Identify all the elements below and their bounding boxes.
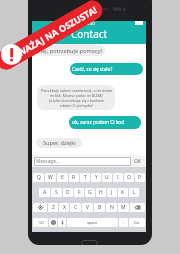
staticText: F [78, 189, 81, 196]
staticText: G [88, 189, 92, 196]
staticText: D [66, 189, 70, 196]
button[interactable]: K [118, 188, 128, 197]
button[interactable]: OK [131, 157, 144, 166]
button[interactable]: G [85, 188, 95, 197]
staticText: 123 [38, 220, 44, 225]
staticText: S [55, 189, 58, 196]
staticText: Z [52, 204, 55, 211]
button[interactable]: M [118, 203, 129, 212]
button[interactable]: W [45, 173, 56, 182]
button[interactable]: Contact [32, 27, 146, 44]
staticText: I [117, 174, 119, 181]
staticText: M [121, 204, 126, 211]
button[interactable]: R [69, 173, 79, 182]
staticText: ok, zaraz podam Ci kod [72, 119, 125, 126]
staticText: U [105, 174, 109, 181]
staticText: 12:00 [84, 21, 95, 27]
button[interactable]: Voice input [58, 218, 66, 227]
button[interactable]: 123 [33, 218, 48, 227]
button[interactable]: . [119, 218, 128, 227]
button[interactable]: H [96, 188, 106, 197]
staticText: H [99, 189, 103, 196]
staticText: Super, dzięki [43, 139, 76, 147]
button[interactable]: X [59, 203, 69, 212]
button[interactable]: D [63, 188, 73, 197]
button[interactable]: Backspace [130, 203, 145, 212]
button[interactable]: J [107, 188, 117, 197]
button[interactable]: Go [129, 218, 145, 227]
button[interactable]: Shift [33, 203, 47, 212]
button[interactable]: Y [91, 173, 101, 182]
staticText: N [110, 204, 114, 211]
button[interactable]: space [67, 218, 118, 227]
staticText: Message... [36, 158, 60, 165]
button[interactable]: B [94, 203, 105, 212]
staticText: W [48, 174, 53, 181]
staticText: E [61, 174, 64, 181]
staticText: C [74, 204, 78, 211]
staticText: Hej, potrzebuje pomocy! [38, 47, 103, 55]
button[interactable]: Z [48, 203, 58, 212]
button[interactable]: S [51, 188, 62, 197]
button[interactable]: N [106, 203, 117, 212]
staticText: Go [134, 220, 140, 225]
staticText: OK [134, 158, 141, 165]
staticText: V [86, 204, 90, 211]
staticText: Q [37, 174, 41, 181]
button[interactable]: O [124, 173, 134, 182]
staticText: T [84, 174, 87, 181]
staticText: J [111, 189, 113, 196]
staticText: space [87, 220, 98, 225]
button[interactable]: V [82, 203, 93, 212]
staticText: O [127, 174, 131, 181]
staticText: R [72, 174, 76, 181]
button[interactable]: P [135, 173, 145, 182]
staticText: B [98, 204, 102, 211]
staticText: UWAŻAJ NA OSZUSTA! [9, 3, 99, 62]
staticText: Potrzebuje opłacić zamówienie, a nie dzi… [41, 88, 112, 108]
button[interactable]: L [129, 188, 139, 197]
staticText: A [43, 189, 47, 196]
button[interactable]: A [39, 188, 50, 197]
staticText: Y [95, 174, 98, 181]
staticText: Cześć, co się stało? [72, 66, 113, 72]
button[interactable]: T [80, 173, 90, 182]
button[interactable]: Q [33, 173, 44, 182]
staticText: P [138, 174, 142, 181]
button[interactable]: E [57, 173, 68, 182]
button[interactable]: I [113, 173, 123, 182]
staticText: . [123, 219, 125, 226]
button[interactable]: Language [49, 218, 57, 227]
staticText: X [63, 204, 66, 211]
staticText: L [133, 189, 136, 196]
button[interactable]: U [102, 173, 112, 182]
button[interactable]: C [70, 203, 81, 212]
staticText: K [121, 189, 125, 196]
staticText: Contact [71, 27, 108, 41]
button[interactable]: F [74, 188, 84, 197]
